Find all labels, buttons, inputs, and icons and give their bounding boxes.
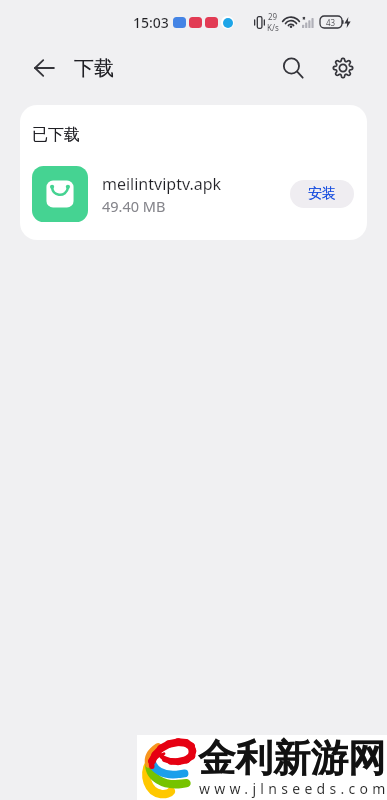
staticText: 金利新游网 [198,735,386,782]
staticText: www.jlnseeds.com [199,779,387,798]
staticText: 43 [326,17,336,28]
staticText: K/s [267,22,279,33]
button[interactable]: meilintviptv.apk [32,159,354,229]
staticText: 49.40 MB [102,196,166,216]
button[interactable]: 安装 [290,180,354,208]
button[interactable]: Settings [324,49,362,87]
staticText: 15:03 [133,13,169,32]
staticText: 29 [268,11,278,22]
staticText: 金利新游网 [198,735,386,782]
staticText: 安装 [308,185,336,203]
staticText: meilintviptv.apk [102,173,222,195]
staticText: 已下载 [32,125,80,145]
staticText: 已下载 [32,125,80,145]
button[interactable]: Search [274,49,312,87]
button[interactable]: Back [25,49,63,87]
staticText: 安装 [308,185,336,203]
staticText: 下载 [74,56,114,81]
staticText: 下载 [74,56,114,81]
